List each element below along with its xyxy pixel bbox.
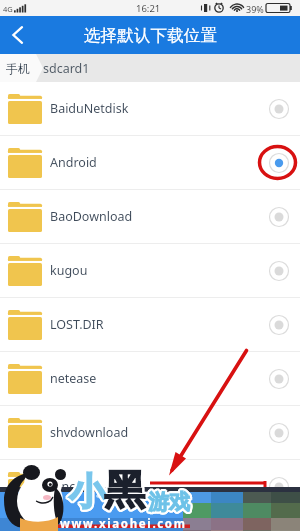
staticText: 黑 <box>102 464 143 516</box>
staticText: 黑 <box>106 464 147 516</box>
staticText: 黑 <box>104 466 145 518</box>
staticText: 手机 <box>6 61 30 76</box>
staticText: 黑 <box>104 463 145 515</box>
button[interactable]: Select folder <box>269 369 289 389</box>
staticText: 游戏 <box>148 490 190 516</box>
button[interactable]: sdcard1 <box>43 54 90 82</box>
staticText: 小 <box>70 469 107 516</box>
staticText: 小 <box>71 469 108 516</box>
button[interactable]: Select folder <box>269 423 289 443</box>
staticText: 小 <box>69 468 106 515</box>
staticText: 4G <box>3 4 13 14</box>
staticText: 黑 <box>105 467 146 519</box>
staticText: netease <box>50 370 97 387</box>
staticText: 游戏 <box>148 491 190 517</box>
staticText: BaiduNetdisk <box>50 100 129 117</box>
staticText: 游戏 <box>149 488 191 514</box>
staticText: sdcard1 <box>43 60 90 77</box>
staticText: 小 <box>67 468 104 515</box>
staticText: 黑 <box>104 467 145 519</box>
staticText: 黑 <box>105 466 146 518</box>
staticText: 小 <box>68 466 105 513</box>
staticText: 黑 <box>106 466 147 518</box>
staticText: 黑 <box>103 466 144 518</box>
staticText: 游戏 <box>147 489 189 515</box>
staticText: 小 <box>70 470 107 517</box>
staticText: 16:21 <box>136 2 161 15</box>
staticText: 游戏 <box>147 488 189 514</box>
staticText: 游戏 <box>147 487 189 513</box>
staticText: 黑 <box>103 465 144 517</box>
staticText: 游戏 <box>150 490 192 516</box>
staticText: 小 <box>69 469 106 516</box>
staticText: 游戏 <box>147 491 189 517</box>
staticText: 黑 <box>103 467 144 519</box>
staticText: 小 <box>68 467 105 514</box>
staticText: 游戏 <box>147 490 189 516</box>
staticText: 黑 <box>105 464 146 516</box>
staticText: 小 <box>70 466 107 513</box>
button[interactable]: 手机 <box>0 54 36 82</box>
staticText: 黑 <box>103 463 144 515</box>
button[interactable]: tencent <box>0 460 300 514</box>
staticText: 小 <box>69 470 106 517</box>
staticText: 黑 <box>104 465 145 517</box>
staticText: 游戏 <box>148 488 190 514</box>
staticText: shvdownload <box>50 424 129 441</box>
button[interactable]: Android <box>0 136 300 190</box>
staticText: 游戏 <box>149 489 191 515</box>
staticText: 游戏 <box>146 490 188 516</box>
staticText: 黑 <box>105 463 146 515</box>
staticText: 游戏 <box>146 488 188 514</box>
staticText: 小 <box>71 468 108 515</box>
staticText: 黑 <box>104 464 145 516</box>
button[interactable]: Select folder <box>269 99 289 119</box>
staticText: 黑 <box>106 465 147 517</box>
staticText: 游戏 <box>149 491 191 517</box>
button[interactable]: LOST.DIR <box>0 298 300 352</box>
button[interactable]: Select folder <box>269 477 289 497</box>
staticText: 小 <box>68 468 105 515</box>
staticText: 游戏 <box>148 489 190 515</box>
staticText: 游戏 <box>149 490 191 516</box>
button[interactable]: kugou <box>0 244 300 298</box>
staticText: 游戏 <box>150 489 192 515</box>
staticText: 选择默认下载位置 <box>84 25 217 46</box>
staticText: 游戏 <box>146 489 188 515</box>
staticText: 黑 <box>105 465 146 517</box>
staticText: 小 <box>69 468 106 515</box>
staticText: 游戏 <box>148 487 190 513</box>
staticText: 小 <box>70 468 107 515</box>
button[interactable]: Back <box>0 16 36 54</box>
staticText: Android <box>50 154 97 171</box>
staticText: www.xiaohei.com <box>60 516 187 531</box>
staticText: tencent <box>50 478 95 495</box>
staticText: 小 <box>69 466 106 513</box>
staticText: 游戏 <box>150 488 192 514</box>
button[interactable]: Select folder <box>269 261 289 281</box>
staticText: 小 <box>70 467 107 514</box>
staticText: 小 <box>69 467 106 514</box>
button[interactable]: BaoDownload <box>0 190 300 244</box>
staticText: 小 <box>68 469 105 516</box>
staticText: 黑 <box>104 465 145 517</box>
staticText: 39% <box>246 3 264 15</box>
staticText: LOST.DIR <box>50 316 104 333</box>
staticText: 小 <box>68 470 105 517</box>
button[interactable]: BaiduNetdisk <box>0 82 300 136</box>
staticText: 黑 <box>102 466 143 518</box>
staticText: 黑 <box>103 464 144 516</box>
staticText: 黑 <box>102 465 143 517</box>
staticText: kugou <box>50 262 88 279</box>
staticText: 小 <box>67 469 104 516</box>
staticText: 小 <box>71 467 108 514</box>
button[interactable]: netease <box>0 352 300 406</box>
button[interactable]: Select folder <box>269 207 289 227</box>
staticText: 小 <box>67 467 104 514</box>
staticText: 游戏 <box>149 487 191 513</box>
button[interactable]: shvdownload <box>0 406 300 460</box>
button[interactable]: Select folder <box>269 315 289 335</box>
button[interactable]: Select folder <box>269 153 289 173</box>
staticText: BaoDownload <box>50 208 133 225</box>
staticText: 游戏 <box>148 489 190 515</box>
